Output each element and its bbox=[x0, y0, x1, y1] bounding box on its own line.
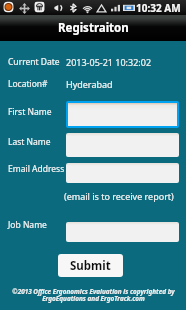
staticText: Current Date bbox=[8, 56, 60, 68]
button[interactable]: Submit bbox=[58, 254, 123, 277]
staticText: First Name bbox=[8, 106, 52, 118]
staticText: 2013-05-21 10:32:02 bbox=[66, 56, 152, 68]
staticText: Job Name bbox=[8, 219, 47, 231]
button[interactable]: First Name bbox=[66, 101, 179, 128]
staticText: Email Address bbox=[8, 163, 65, 175]
staticText: 10:32 AM bbox=[136, 1, 181, 15]
staticText: Last Name bbox=[8, 136, 51, 148]
staticText: Submit bbox=[70, 258, 111, 274]
button[interactable]: Email Address bbox=[66, 163, 179, 183]
staticText: ©2013 Office Ergonomics Evaluation is co… bbox=[12, 287, 175, 296]
staticText: Registraiton bbox=[58, 20, 129, 36]
button[interactable]: Job Name bbox=[66, 222, 179, 242]
staticText: ErgoEquations and ErgoTrack.com bbox=[42, 294, 145, 303]
staticText: Location# bbox=[8, 78, 48, 90]
button[interactable]: Last Name bbox=[66, 133, 179, 157]
staticText: (email is to receive report) bbox=[64, 190, 174, 202]
staticText: Hyderabad bbox=[66, 78, 113, 90]
